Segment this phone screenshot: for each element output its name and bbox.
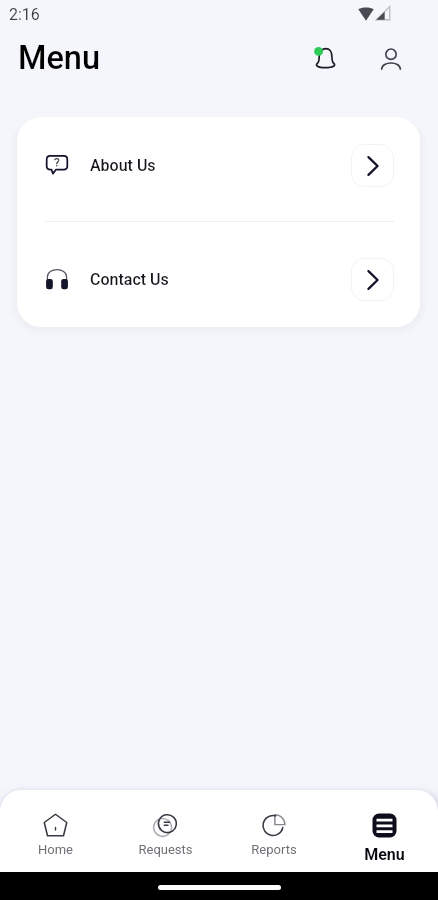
button[interactable]: Menu (329, 790, 438, 872)
staticText: Requests (138, 842, 193, 857)
button[interactable]: Home (0, 790, 110, 872)
button[interactable]: Requests (110, 790, 220, 872)
button[interactable]: Notifications (305, 39, 343, 77)
staticText: Contact Us (90, 270, 169, 289)
staticText: About Us (90, 156, 156, 175)
button[interactable]: Account (372, 40, 410, 78)
button[interactable]: Reports (219, 790, 329, 872)
staticText: Menu (18, 39, 100, 77)
staticText: Reports (251, 842, 297, 857)
button[interactable]: Contact Us (17, 231, 420, 327)
staticText: Menu (364, 845, 405, 864)
button[interactable]: About Us (17, 117, 420, 213)
staticText: 2:16 (9, 5, 40, 24)
staticText: Home (38, 842, 73, 857)
